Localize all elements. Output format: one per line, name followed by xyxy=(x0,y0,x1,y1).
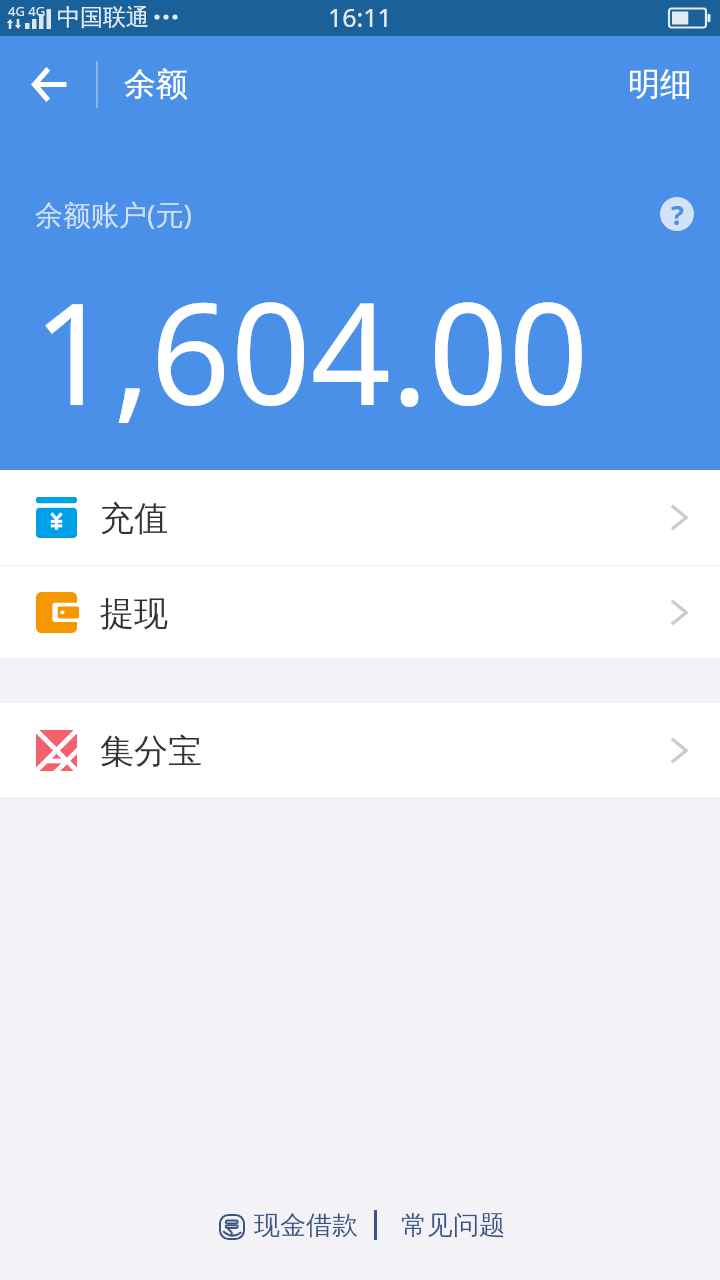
button[interactable]: 集分宝 xyxy=(0,703,720,797)
button[interactable]: Help xyxy=(660,197,694,231)
button[interactable]: Back xyxy=(0,36,96,124)
staticText: 集分宝 xyxy=(100,730,202,773)
staticText: 明细 xyxy=(628,64,692,104)
staticText: 中国联通 xyxy=(57,3,149,32)
staticText: 4G 4G xyxy=(8,2,46,20)
staticText: 充值 xyxy=(100,497,168,540)
staticText: 提现 xyxy=(100,592,168,635)
staticText: 现金借款 xyxy=(254,1209,358,1242)
staticText: ? xyxy=(671,196,684,230)
button[interactable]: 现金借款 xyxy=(219,1209,358,1242)
staticText: 余额账户(元) xyxy=(35,195,192,233)
staticText: 16:11 xyxy=(328,0,392,34)
button[interactable]: 充值 xyxy=(0,470,720,565)
button[interactable]: 提现 xyxy=(0,566,720,658)
button[interactable]: 常见问题 xyxy=(401,1209,505,1242)
staticText: 1,604.00 xyxy=(33,255,589,446)
button[interactable]: 明细 xyxy=(600,40,720,128)
staticText: 余额 xyxy=(124,64,188,104)
